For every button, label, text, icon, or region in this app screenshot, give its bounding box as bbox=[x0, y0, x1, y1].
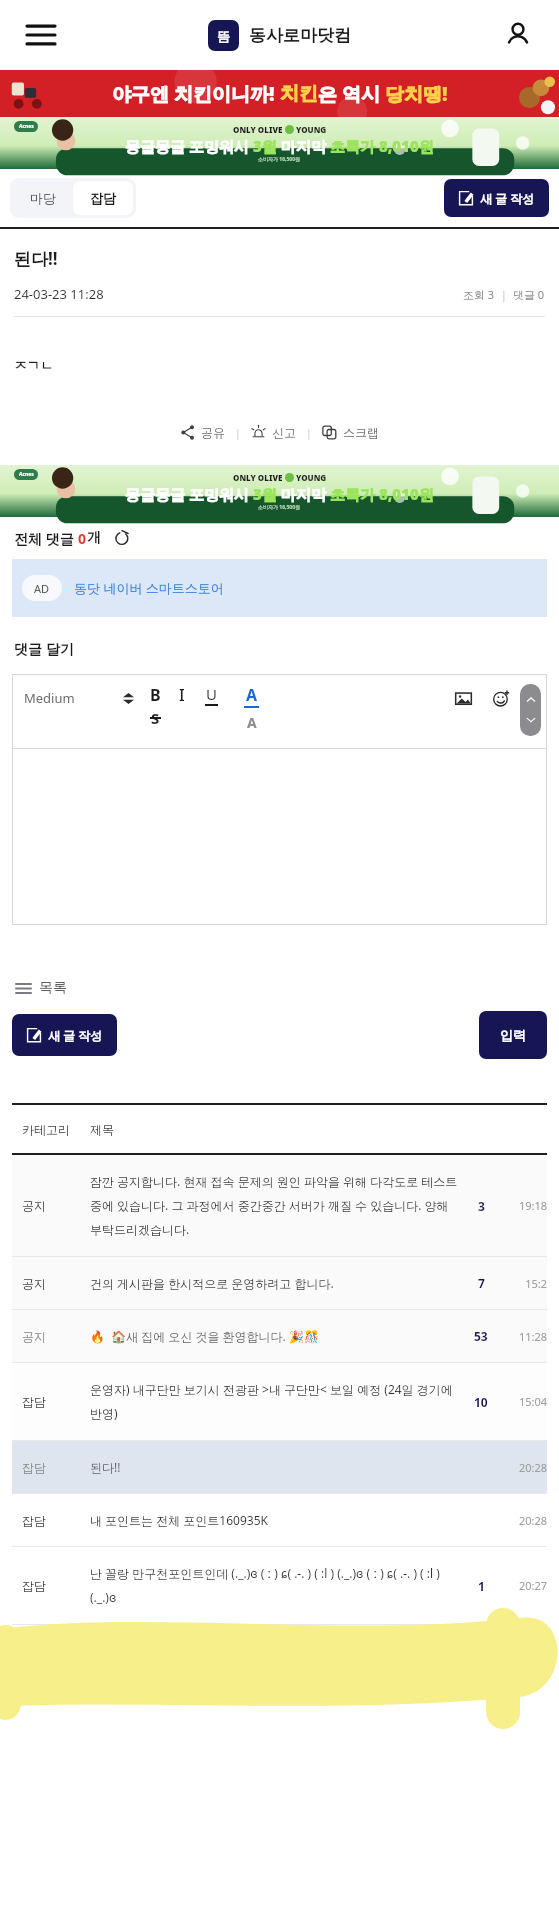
staticText: 15:2 bbox=[497, 1276, 547, 1291]
staticText: 1 bbox=[478, 1578, 485, 1594]
staticText: 공지 bbox=[22, 1276, 90, 1291]
staticText: YOUNG bbox=[294, 472, 327, 483]
staticText: 공지 bbox=[22, 1198, 90, 1213]
button[interactable]: 잡담 bbox=[12, 1441, 547, 1493]
button[interactable]: Profile bbox=[495, 12, 541, 58]
button[interactable]: 새 글 작성 bbox=[12, 1014, 117, 1056]
button[interactable]: S bbox=[151, 708, 160, 728]
button[interactable]: Medium bbox=[24, 689, 134, 707]
staticText: 당치땡! bbox=[385, 81, 448, 107]
button[interactable]: 공지 bbox=[12, 1257, 547, 1309]
staticText: 조회 3 bbox=[463, 287, 495, 302]
button[interactable]: 공지 bbox=[12, 1310, 547, 1362]
staticText: 공지 bbox=[22, 1329, 90, 1344]
button[interactable]: ONLY OLIVE bbox=[0, 117, 559, 169]
staticText: ㅈㄱㄴ bbox=[14, 357, 53, 373]
staticText: 🔥 🏠새 집에 오신 것을 환영합니다. 🎉🎊 bbox=[90, 1328, 459, 1344]
staticText: 목록 bbox=[39, 979, 67, 997]
button[interactable]: Menu bbox=[18, 12, 64, 58]
staticText: 3월 bbox=[253, 136, 281, 156]
button[interactable] bbox=[12, 749, 547, 925]
staticText: 전체 댓글 bbox=[14, 529, 78, 548]
button[interactable]: 공유 bbox=[176, 420, 229, 445]
staticText: 7 bbox=[478, 1275, 485, 1291]
staticText: 19:18 bbox=[497, 1198, 547, 1213]
staticText: | bbox=[300, 425, 318, 440]
button[interactable]: 잡담 bbox=[73, 181, 133, 215]
staticText: 된다!! bbox=[14, 247, 58, 270]
staticText: 제목 bbox=[90, 1122, 114, 1137]
staticText: | bbox=[495, 287, 513, 302]
staticText: 몽글몽글 포밍워시 bbox=[125, 484, 253, 504]
button[interactable]: 잡담 bbox=[12, 1494, 547, 1546]
button[interactable]: 공지 bbox=[12, 1155, 547, 1256]
staticText: 잡담 bbox=[22, 1578, 90, 1593]
staticText: 소비자가 16,500원 bbox=[258, 156, 301, 163]
button[interactable]: I bbox=[179, 684, 185, 706]
button[interactable]: A bbox=[247, 713, 257, 732]
staticText: 된다!! bbox=[90, 1459, 459, 1475]
button[interactable]: 입력 bbox=[479, 1011, 547, 1059]
button[interactable]: 신고 bbox=[247, 420, 300, 445]
staticText: 몽글몽글 포밍워시 bbox=[125, 136, 253, 156]
staticText: 새 글 작성 bbox=[480, 190, 535, 206]
staticText: 잡담 bbox=[22, 1394, 90, 1409]
button[interactable]: Insert image bbox=[452, 687, 474, 709]
staticText: Medium bbox=[24, 689, 75, 707]
button[interactable]: B bbox=[150, 684, 161, 706]
button[interactable]: AD bbox=[12, 559, 547, 617]
staticText: 20:28 bbox=[497, 1513, 547, 1528]
button[interactable]: Emoji bbox=[490, 687, 512, 709]
staticText: 스크랩 bbox=[343, 425, 379, 440]
staticText: 잠깐 공지합니다. 현재 접속 문제의 원인 파악을 위해 다각도로 테스트 중… bbox=[90, 1173, 459, 1238]
staticText: 공유 bbox=[201, 425, 225, 440]
button[interactable]: 잡담 bbox=[12, 1547, 547, 1624]
button[interactable]: 목록 bbox=[12, 975, 71, 1001]
staticText: 동닷 네이버 스마트스토어 bbox=[74, 579, 224, 597]
staticText: A bbox=[246, 684, 258, 706]
button[interactable]: U bbox=[205, 684, 218, 706]
staticText: 내 포인트는 전체 포인트160935K bbox=[90, 1512, 459, 1528]
staticText: 초특가 8,010원 bbox=[330, 484, 434, 504]
staticText: ONLY OLIVE bbox=[233, 472, 285, 483]
staticText: 잡담 bbox=[22, 1460, 90, 1475]
button[interactable]: 잡담 bbox=[12, 1363, 547, 1440]
button[interactable]: Expand editor bbox=[520, 684, 541, 736]
staticText: 53 bbox=[474, 1328, 488, 1344]
button[interactable]: Refresh comments bbox=[109, 525, 135, 551]
staticText: 마지막 bbox=[281, 484, 330, 504]
staticText: Acnes bbox=[19, 471, 34, 478]
staticText: 잡담 bbox=[90, 190, 116, 206]
staticText: 20:27 bbox=[497, 1578, 547, 1593]
button[interactable]: ONLY OLIVE bbox=[0, 465, 559, 517]
button[interactable]: 마당 bbox=[13, 181, 73, 215]
staticText: 댓글 0 bbox=[513, 287, 545, 302]
button[interactable]: A bbox=[244, 684, 259, 708]
staticText: 카테고리 bbox=[22, 1122, 90, 1137]
staticText: 24-03-23 11:28 bbox=[14, 285, 104, 303]
staticText: | bbox=[229, 425, 247, 440]
staticText: 입력 bbox=[500, 1027, 526, 1043]
button[interactable]: 야구엔 치킨이니까! bbox=[0, 70, 559, 117]
staticText: 동사로마닷컴 bbox=[249, 25, 351, 46]
staticText: 15:04 bbox=[497, 1394, 547, 1409]
staticText: 은 역시 bbox=[318, 81, 385, 107]
staticText: 뜸 bbox=[217, 28, 230, 44]
staticText: 치킨 bbox=[280, 82, 318, 106]
staticText: YOUNG bbox=[294, 124, 327, 135]
staticText: 11:28 bbox=[497, 1329, 547, 1344]
button[interactable]: 스크랩 bbox=[318, 420, 383, 445]
staticText: 0 bbox=[78, 529, 87, 548]
staticText: 건의 게시판을 한시적으로 운영하려고 합니다. bbox=[90, 1275, 459, 1291]
button[interactable]: 새 글 작성 bbox=[444, 179, 549, 217]
staticText: 소비자가 16,500원 bbox=[258, 504, 301, 511]
staticText: 초특가 8,010원 bbox=[330, 136, 434, 156]
staticText: 새 글 작성 bbox=[48, 1027, 103, 1043]
staticText: 20:28 bbox=[497, 1460, 547, 1475]
staticText: 난 꼴랑 만구천포인트인데 (._.)ɞ ( ː ) ɕ( .-. ) ( :l… bbox=[90, 1565, 459, 1606]
staticText: 10 bbox=[474, 1394, 488, 1410]
staticText: 운영자) 내구단만 보기시 전광판 >내 구단만< 보일 예정 (24일 경기에… bbox=[90, 1381, 459, 1422]
staticText: ONLY OLIVE bbox=[233, 124, 285, 135]
staticText: 야구엔 치킨이니까! bbox=[112, 81, 280, 107]
staticText: 댓글 달기 bbox=[14, 639, 74, 658]
